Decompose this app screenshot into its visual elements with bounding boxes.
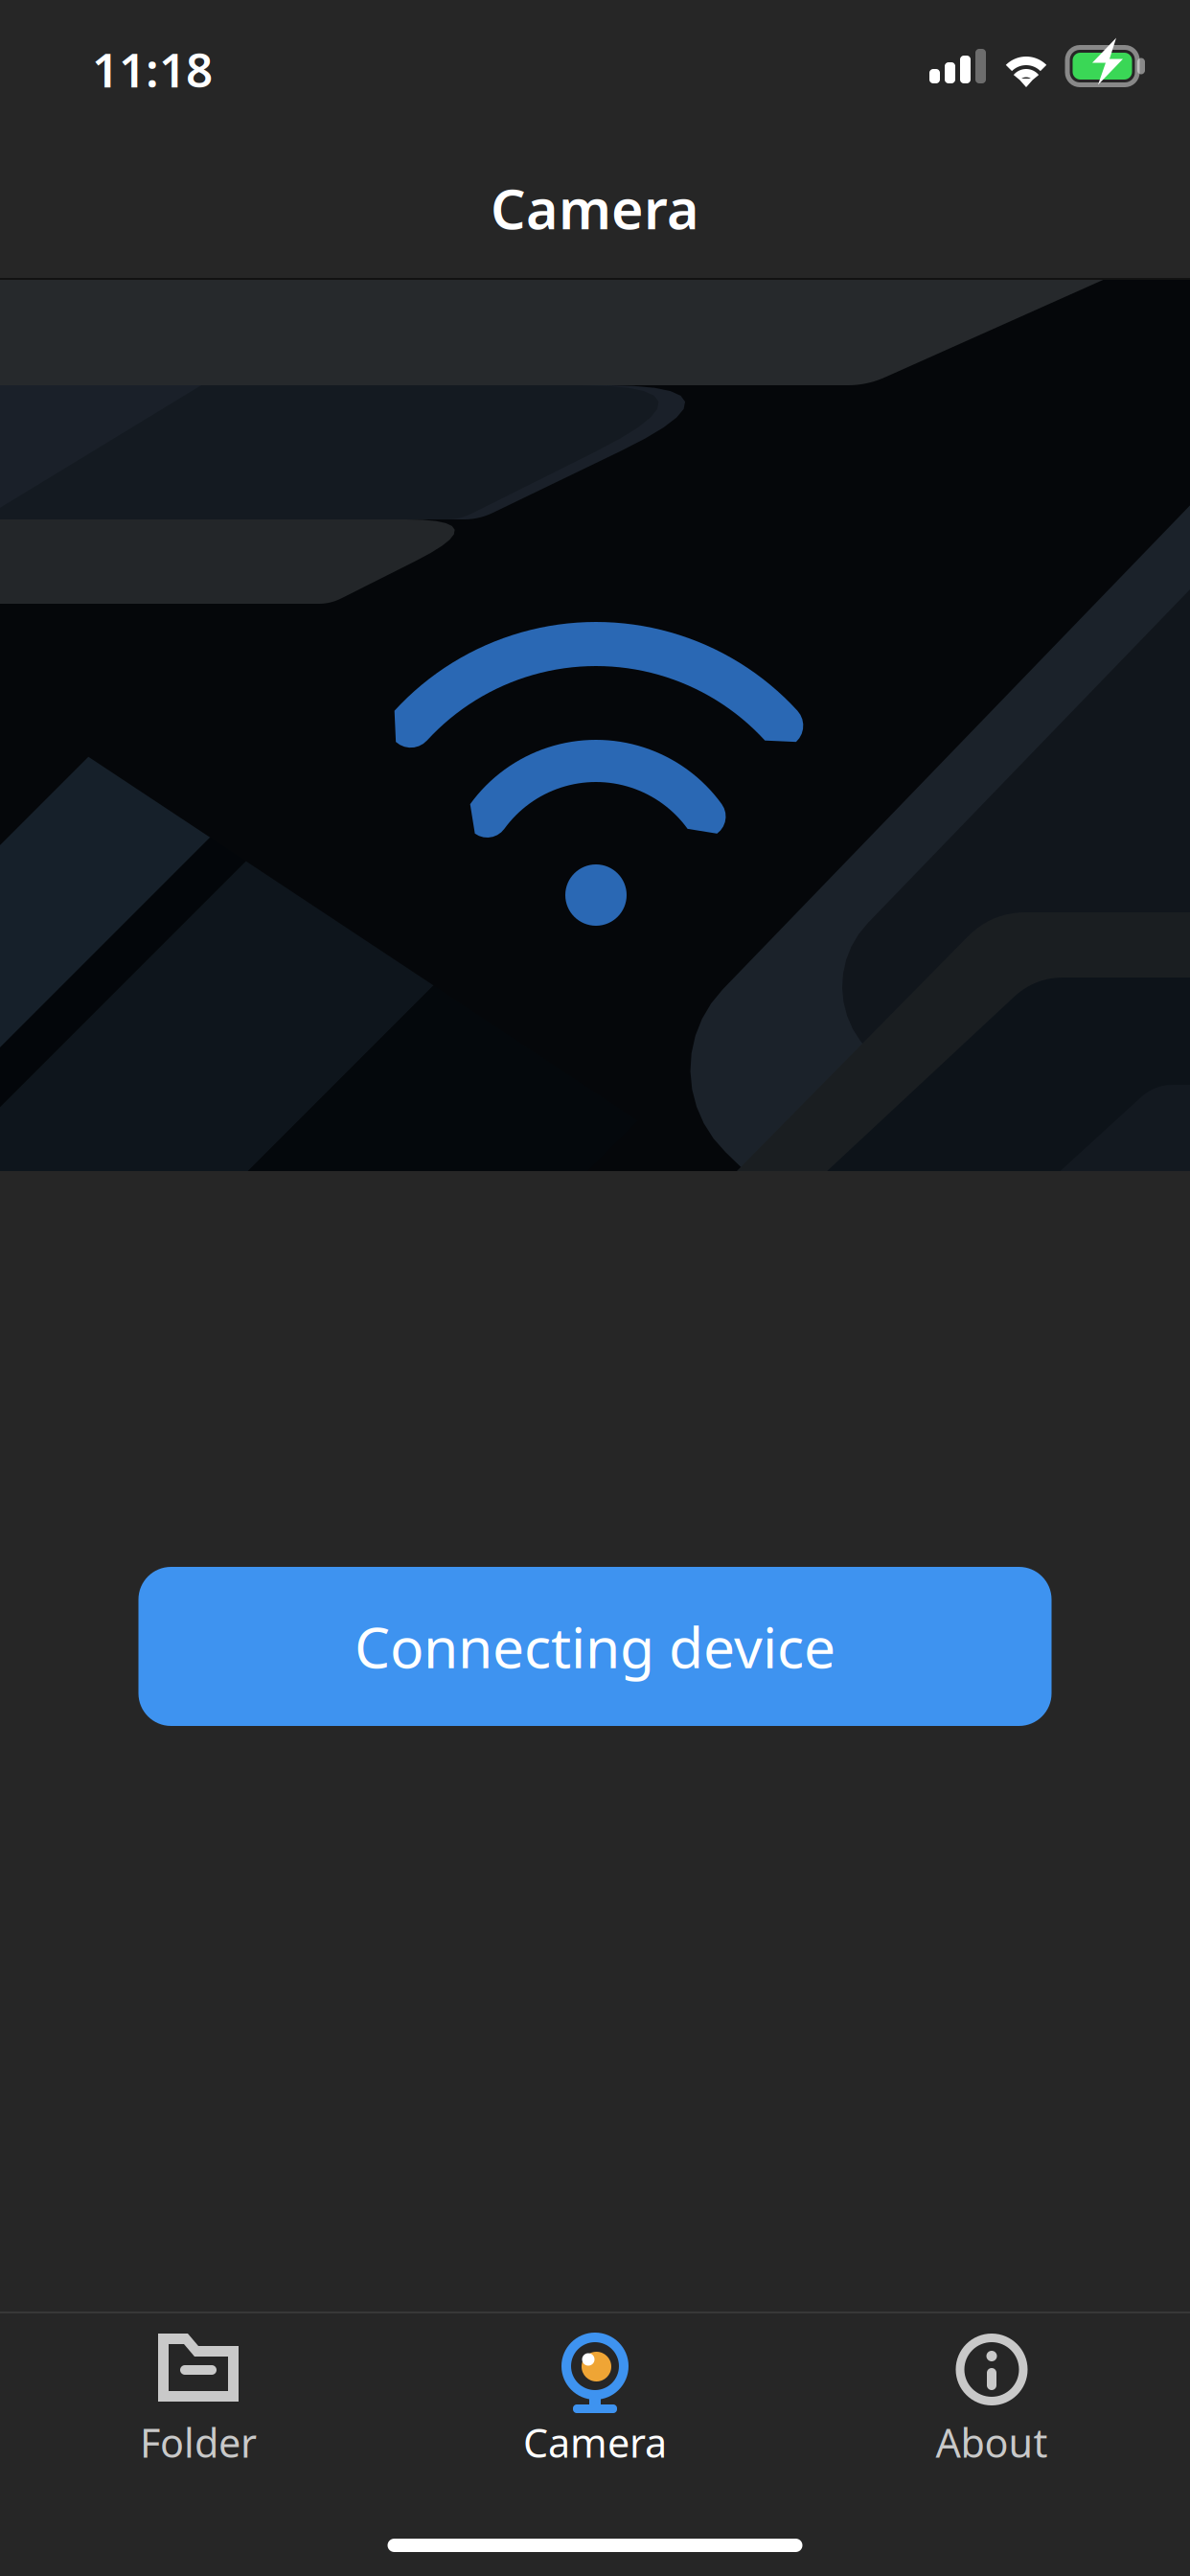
- staticText: Camera: [491, 171, 699, 244]
- button[interactable]: Camera: [397, 2313, 793, 2488]
- button[interactable]: Connecting device: [138, 1567, 1052, 1726]
- staticText: 11:18: [92, 38, 213, 100]
- staticText: About: [936, 2416, 1048, 2469]
- staticText: Camera: [523, 2416, 667, 2469]
- staticText: Connecting device: [355, 1609, 835, 1684]
- button[interactable]: About: [793, 2313, 1190, 2488]
- button[interactable]: Folder: [0, 2313, 397, 2488]
- staticText: Folder: [140, 2416, 257, 2469]
